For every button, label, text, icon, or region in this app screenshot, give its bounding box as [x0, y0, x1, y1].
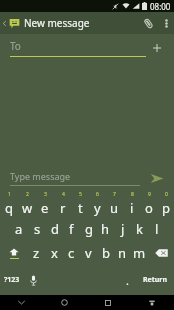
- button[interactable]: Back: [0, 12, 9, 34]
- staticText: l: [155, 220, 159, 238]
- button[interactable]: Voice input: [23, 265, 44, 295]
- button[interactable]: Shift: [0, 241, 27, 265]
- staticText: t: [78, 199, 83, 217]
- staticText: Return: [143, 275, 168, 285]
- button[interactable]: Return: [136, 265, 174, 295]
- button[interactable]: 9: [140, 191, 157, 217]
- button[interactable]: h: [97, 217, 114, 241]
- staticText: d: [51, 220, 59, 238]
- staticText: 4: [62, 191, 65, 198]
- button[interactable]: ?123: [0, 265, 23, 295]
- button[interactable]: c: [63, 241, 80, 265]
- button[interactable]: 0: [157, 191, 174, 217]
- button[interactable]: 3: [36, 191, 54, 217]
- button[interactable]: m: [131, 241, 148, 265]
- staticText: 8: [131, 191, 134, 198]
- staticText: m: [133, 244, 146, 262]
- button[interactable]: d: [46, 217, 63, 241]
- staticText: w: [22, 199, 33, 217]
- button[interactable]: Type message: [10, 170, 140, 186]
- button[interactable]: Home: [43, 295, 86, 310]
- staticText: e: [41, 199, 49, 217]
- staticText: p: [162, 199, 170, 217]
- staticText: v: [85, 244, 92, 262]
- button[interactable]: .: [118, 265, 136, 295]
- button[interactable]: b: [97, 241, 114, 265]
- button[interactable]: f: [63, 217, 80, 241]
- staticText: x: [51, 244, 58, 262]
- staticText: 6: [96, 191, 99, 198]
- button[interactable]: x: [45, 241, 63, 265]
- button[interactable]: z: [27, 241, 45, 265]
- staticText: f: [69, 220, 74, 238]
- staticText: q: [5, 199, 13, 217]
- staticText: 0: [165, 191, 168, 198]
- button[interactable]: 7: [106, 191, 123, 217]
- button[interactable]: Hide keyboard: [0, 295, 43, 310]
- staticText: c: [68, 244, 75, 262]
- button[interactable]: Add recipient: [146, 34, 168, 62]
- staticText: y: [94, 199, 101, 217]
- button[interactable]: 5: [72, 191, 89, 217]
- staticText: h: [101, 220, 110, 238]
- button[interactable]: s: [28, 217, 46, 241]
- staticText: s: [34, 220, 41, 238]
- button[interactable]: 6: [89, 191, 106, 217]
- button[interactable]: j: [114, 217, 131, 241]
- staticText: g: [85, 220, 93, 238]
- staticText: Type message: [10, 170, 71, 182]
- staticText: j: [121, 220, 125, 238]
- staticText: 08:00: [150, 1, 171, 12]
- button[interactable]: 8: [123, 191, 140, 217]
- button[interactable]: More options: [158, 12, 174, 34]
- button[interactable]: Switch keyboard: [130, 295, 174, 310]
- staticText: r: [60, 199, 66, 217]
- button[interactable]: k: [131, 217, 148, 241]
- button[interactable]: n: [114, 241, 131, 265]
- button[interactable]: Attach: [138, 12, 158, 34]
- button[interactable]: l: [148, 217, 165, 241]
- staticText: z: [33, 244, 40, 262]
- staticText: a: [15, 220, 23, 238]
- staticText: ?123: [4, 275, 20, 285]
- button[interactable]: 1: [0, 191, 18, 217]
- staticText: n: [118, 244, 127, 262]
- button[interactable]: 2: [18, 191, 36, 217]
- button[interactable]: v: [80, 241, 97, 265]
- staticText: 9: [148, 191, 151, 198]
- staticText: i: [130, 199, 134, 217]
- staticText: b: [102, 244, 110, 262]
- staticText: To: [10, 39, 21, 53]
- button[interactable]: Recents: [86, 295, 130, 310]
- staticText: 1: [8, 191, 11, 198]
- staticText: k: [136, 220, 143, 238]
- staticText: 7: [113, 191, 116, 198]
- staticText: .: [126, 273, 129, 288]
- button[interactable]: a: [10, 217, 28, 241]
- staticText: 2: [26, 191, 29, 198]
- staticText: 5: [79, 191, 82, 198]
- staticText: o: [145, 199, 153, 217]
- staticText: 3: [44, 191, 47, 198]
- staticText: u: [110, 199, 119, 217]
- button[interactable]: Send: [144, 167, 170, 189]
- button[interactable]: 4: [54, 191, 72, 217]
- button[interactable]: Backspace: [148, 241, 174, 265]
- staticText: New message: [24, 16, 90, 30]
- button[interactable]: g: [80, 217, 97, 241]
